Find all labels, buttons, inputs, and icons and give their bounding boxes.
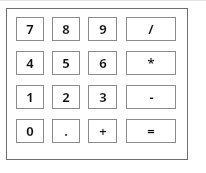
staticText: 1 xyxy=(26,88,34,106)
button[interactable]: Equals xyxy=(126,119,176,143)
button[interactable]: 6 xyxy=(88,51,117,75)
staticText: * xyxy=(147,54,155,72)
button[interactable]: 2 xyxy=(52,85,80,109)
button[interactable]: 7 xyxy=(16,17,44,41)
button[interactable]: Plus xyxy=(88,119,117,143)
staticText: + xyxy=(99,122,107,140)
button[interactable]: Minus xyxy=(126,85,176,109)
staticText: 7 xyxy=(26,20,34,38)
button[interactable]: Multiply xyxy=(126,51,176,75)
button[interactable]: 0 xyxy=(16,119,44,143)
button[interactable]: 1 xyxy=(16,85,44,109)
staticText: . xyxy=(64,122,68,140)
staticText: 6 xyxy=(99,54,107,72)
button[interactable]: 5 xyxy=(52,51,80,75)
staticText: 9 xyxy=(99,20,107,38)
staticText: 8 xyxy=(62,20,70,38)
staticText: 2 xyxy=(62,88,70,106)
button[interactable]: 8 xyxy=(52,17,80,41)
staticText: / xyxy=(148,20,154,38)
staticText: 5 xyxy=(62,54,70,72)
button[interactable]: Decimal point xyxy=(52,119,80,143)
button[interactable]: 3 xyxy=(88,85,117,109)
staticText: - xyxy=(149,88,154,106)
staticText: 4 xyxy=(26,54,34,72)
button[interactable]: Divide xyxy=(126,17,176,41)
staticText: 0 xyxy=(26,122,34,140)
button[interactable]: 9 xyxy=(88,17,117,41)
button[interactable]: 4 xyxy=(16,51,44,75)
staticText: 3 xyxy=(99,88,107,106)
staticText: = xyxy=(147,122,155,140)
